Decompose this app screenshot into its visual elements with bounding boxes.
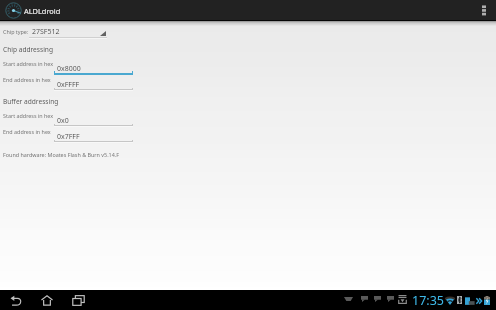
button[interactable]: Recent apps <box>65 290 92 310</box>
staticText: Buffer addressing <box>3 97 59 106</box>
button[interactable]: 27SF512 <box>29 27 107 38</box>
button[interactable]: 0x0 <box>54 112 133 127</box>
button[interactable]: 0xFFFF <box>54 76 133 91</box>
staticText: 0xFFFF <box>57 80 80 90</box>
staticText: 0x8000 <box>57 64 81 74</box>
staticText: End address in hex <box>3 76 51 83</box>
staticText: Chip addressing <box>3 45 53 54</box>
staticText: Found hardware: Moates Flash & Burn v5.1… <box>3 151 119 158</box>
button[interactable]: 0x8000 <box>54 60 133 75</box>
staticText: 17:35 <box>412 292 444 309</box>
button[interactable]: 0x7FFF <box>54 128 133 143</box>
staticText: ALDLdroid <box>24 6 61 16</box>
staticText: Start address in hex <box>3 60 54 67</box>
staticText: 0x0 <box>57 116 69 126</box>
staticText: 0x7FFF <box>57 132 80 142</box>
staticText: 27SF512 <box>32 27 60 37</box>
staticText: Chip type: <box>3 28 29 35</box>
button[interactable]: More options <box>473 0 496 20</box>
button[interactable]: Back <box>2 290 29 310</box>
button[interactable]: Home <box>33 290 60 310</box>
staticText: End address in hex <box>3 128 51 135</box>
staticText: Start address in hex <box>3 112 54 119</box>
